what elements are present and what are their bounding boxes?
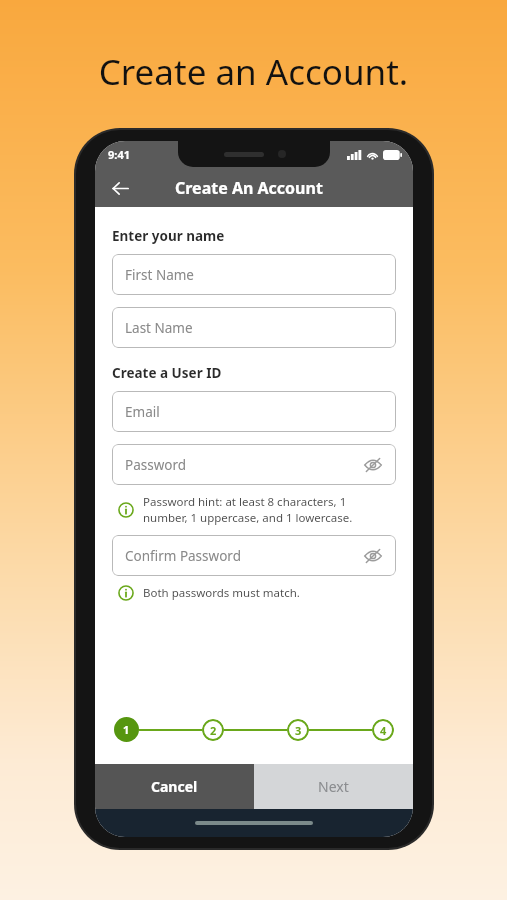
staticText: Password hint: at least 8 characters, 1 … [143,494,353,525]
button[interactable]: Cancel [95,764,254,809]
staticText: 9:41 [108,147,130,162]
button[interactable]: 3 [287,719,309,741]
staticText: Cancel [151,777,198,796]
button[interactable]: Show password [361,453,385,477]
staticText: 4 [380,723,387,738]
staticText: Create an Account. [0,48,507,96]
button[interactable]: 4 [372,719,394,741]
button[interactable]: Email [112,391,396,432]
button[interactable]: Confirm Password [112,535,396,576]
button[interactable]: Back [103,171,137,205]
staticText: 3 [295,723,302,738]
staticText: Confirm Password [125,547,241,565]
button[interactable]: Last Name [112,307,396,348]
staticText: Email [125,403,160,421]
button[interactable]: Show password [361,544,385,568]
staticText: Create An Account [175,177,323,199]
staticText: Both passwords must match. [143,585,300,601]
staticText: Last Name [125,319,193,337]
staticText: Enter your name [112,227,225,245]
staticText: 2 [210,723,217,738]
staticText: First Name [125,266,194,284]
staticText: Password [125,456,187,474]
staticText: Next [318,777,349,796]
button[interactable]: 2 [202,719,224,741]
staticText: Create a User ID [112,364,222,382]
staticText: 1 [123,722,130,737]
button[interactable]: Password [112,444,396,485]
button[interactable]: Next [254,764,413,809]
button[interactable]: First Name [112,254,396,295]
button[interactable]: 1 [114,717,139,742]
